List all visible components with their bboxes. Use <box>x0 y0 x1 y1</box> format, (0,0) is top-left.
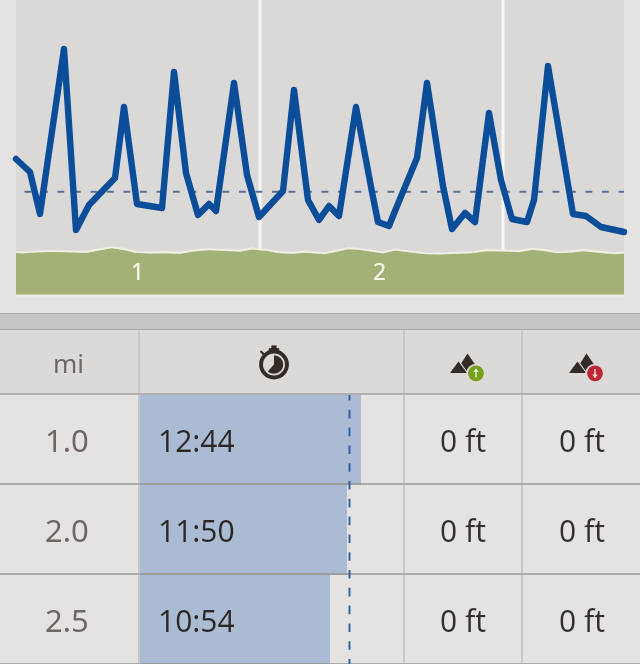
button[interactable]: 2.0 <box>0 485 640 575</box>
staticText: 12:44 <box>158 420 235 461</box>
other: Elevation gain <box>435 335 491 391</box>
staticText: 10:54 <box>158 600 235 641</box>
button[interactable]: Elevation loss <box>523 330 640 395</box>
staticText: 1.0 <box>45 419 89 461</box>
staticText: 0 ft <box>559 510 606 551</box>
staticText: 2.0 <box>45 509 89 551</box>
button[interactable]: Duration <box>140 330 403 395</box>
other: Duration <box>250 341 294 385</box>
staticText: 0 ft <box>440 510 487 551</box>
staticText: 0 ft <box>559 420 606 461</box>
staticText: 2 <box>373 255 387 286</box>
staticText: 0 ft <box>440 420 487 461</box>
staticText: 0 ft <box>440 600 487 641</box>
button[interactable]: mi <box>0 330 138 395</box>
button[interactable]: 1.0 <box>0 395 640 485</box>
staticText: 0 ft <box>559 600 606 641</box>
staticText: 11:50 <box>158 510 235 551</box>
button[interactable]: Elevation gain <box>405 330 521 395</box>
staticText: 1 <box>131 255 145 286</box>
staticText: mi <box>53 345 85 380</box>
button[interactable]: 2.5 <box>0 575 640 664</box>
staticText: 2.5 <box>45 599 89 641</box>
other: Elevation loss <box>554 335 610 391</box>
